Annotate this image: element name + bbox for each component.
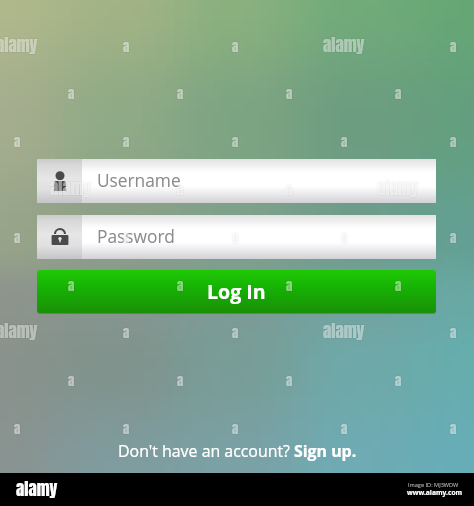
staticText: a [233, 229, 240, 249]
staticText: a [178, 372, 185, 392]
button[interactable]: Don't have an account? Sign up. [118, 440, 357, 462]
staticText: a [287, 370, 294, 390]
staticText: a [124, 322, 131, 342]
staticText: a [15, 133, 22, 153]
staticText: a [396, 372, 403, 392]
staticText: a [231, 38, 238, 58]
staticText: a [342, 229, 349, 249]
staticText: a [13, 229, 20, 249]
staticText: a [177, 84, 184, 104]
staticText: a [286, 371, 293, 391]
button[interactable]: Password [37, 215, 436, 259]
staticText: a [449, 227, 456, 247]
staticText: a [285, 85, 292, 105]
staticText: a [231, 420, 238, 440]
staticText: alamy [0, 318, 38, 344]
staticText: a [449, 131, 456, 151]
staticText: a [123, 323, 130, 343]
staticText: a [232, 132, 239, 152]
staticText: a [67, 372, 74, 392]
staticText: a [287, 85, 294, 105]
staticText: a [176, 372, 183, 392]
staticText: a [286, 276, 293, 296]
staticText: a [122, 131, 129, 151]
staticText: a [123, 37, 130, 57]
staticText: a [178, 179, 185, 199]
staticText: a [178, 83, 185, 103]
staticText: a [451, 418, 458, 438]
staticText: alamy [378, 174, 420, 200]
staticText: a [232, 419, 239, 439]
staticText: a [342, 418, 349, 438]
staticText: a [341, 419, 348, 439]
staticText: a [394, 85, 401, 105]
staticText: a [231, 36, 238, 56]
staticText: alamy [323, 32, 365, 58]
button[interactable]: Log In [37, 270, 436, 313]
staticText: a [232, 228, 239, 248]
staticText: a [286, 180, 293, 200]
staticText: alamy [0, 31, 37, 57]
staticText: alamy [322, 319, 364, 345]
staticText: a [233, 420, 240, 440]
staticText: a [450, 37, 457, 57]
staticText: a [233, 131, 240, 151]
staticText: a [342, 131, 349, 151]
staticText: a [232, 37, 239, 57]
button[interactable]: Username [37, 159, 436, 203]
staticText: a [231, 229, 238, 249]
staticText: alamy [0, 33, 39, 59]
staticText: a [396, 277, 403, 297]
staticText: Username [97, 169, 181, 193]
staticText: a [449, 229, 456, 249]
staticText: a [122, 322, 129, 342]
staticText: a [285, 179, 292, 199]
staticText: a [231, 131, 238, 151]
staticText: a [232, 323, 239, 343]
staticText: a [68, 84, 75, 104]
staticText: a [449, 38, 456, 58]
staticText: a [176, 277, 183, 297]
staticText: a [13, 420, 20, 440]
staticText: alamy [51, 176, 93, 202]
staticText: a [451, 420, 458, 440]
staticText: alamy [0, 317, 37, 343]
staticText: a [285, 83, 292, 103]
staticText: a [396, 83, 403, 103]
staticText: a [176, 370, 183, 390]
staticText: a [233, 322, 240, 342]
staticText: a [13, 133, 20, 153]
staticText: alamy [376, 174, 418, 200]
staticText: alamy [0, 317, 39, 343]
staticText: a [122, 38, 129, 58]
staticText: a [15, 418, 22, 438]
staticText: alamy [50, 175, 92, 201]
staticText: a [67, 85, 74, 105]
staticText: a [287, 275, 294, 295]
staticText: a [451, 322, 458, 342]
staticText: a [176, 85, 183, 105]
staticText: a [451, 38, 458, 58]
staticText: a [123, 228, 130, 248]
staticText: Image ID: MJ3WDW [408, 481, 459, 489]
staticText: a [124, 38, 131, 58]
staticText: alamy [377, 175, 419, 201]
staticText: a [13, 418, 20, 438]
staticText: a [287, 372, 294, 392]
staticText: a [233, 38, 240, 58]
staticText: a [123, 419, 130, 439]
staticText: a [233, 227, 240, 247]
staticText: a [233, 36, 240, 56]
staticText: a [285, 277, 292, 297]
staticText: a [287, 179, 294, 199]
staticText: a [15, 131, 22, 151]
staticText: a [177, 276, 184, 296]
staticText: a [287, 277, 294, 297]
staticText: a [231, 227, 238, 247]
staticText: a [178, 85, 185, 105]
staticText: www.alamy.com [407, 488, 463, 497]
other: Password [50, 227, 70, 247]
staticText: a [285, 370, 292, 390]
staticText: a [124, 133, 131, 153]
staticText: alamy [51, 174, 93, 200]
